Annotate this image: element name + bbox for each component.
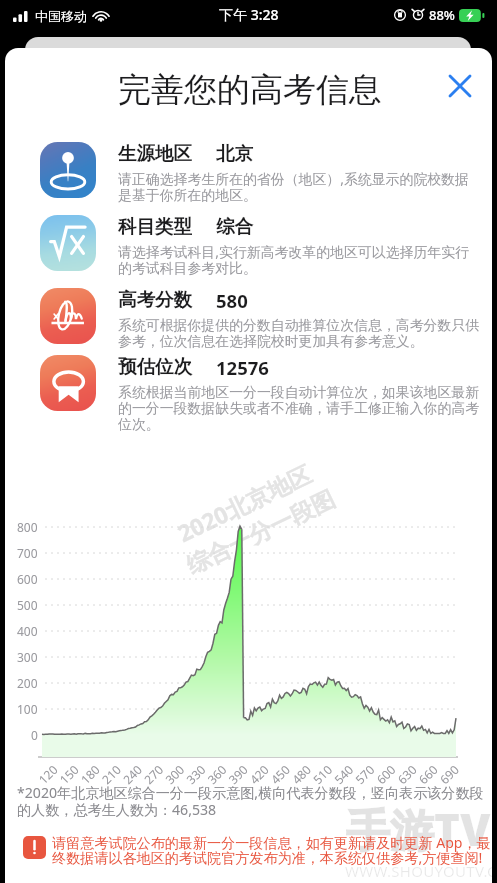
staticText: 综合 — [216, 215, 253, 238]
staticText: 12576 — [216, 355, 269, 380]
staticText: 中国移动 — [35, 8, 87, 24]
staticText: 科目类型 — [118, 215, 192, 238]
staticText: 请选择考试科目,实行新高考改革的地区可以选择历年实行 的考试科目参考对比。 — [118, 242, 469, 277]
staticText: 手游TV — [346, 799, 491, 859]
button[interactable]: 提示 — [23, 836, 46, 859]
staticText: 完善您的高考信息 — [118, 69, 382, 111]
staticText: 预估位次 — [118, 355, 192, 378]
staticText: WWW.SHOUYOUTV.COM — [345, 861, 497, 881]
button[interactable]: 预估位次 — [0, 355, 497, 433]
staticText: *2020年北京地区综合一分一段示意图,横向代表分数段，竖向表示该分数段 的人数… — [17, 783, 484, 820]
staticText: 系统可根据你提供的分数自动推算位次信息，高考分数只供 参考，位次信息在选择院校时… — [118, 317, 480, 350]
button[interactable]: 高考分数 — [0, 288, 497, 350]
staticText: 请正确选择考生所在的省份（地区）,系统显示的院校数据 是基于你所在的地区。 — [118, 169, 469, 204]
button[interactable]: 科目类型 — [0, 215, 497, 277]
staticText: 高考分数 — [118, 288, 192, 311]
staticText: 88% — [429, 6, 455, 24]
staticText: 系统根据当前地区一分一段自动计算位次，如果该地区最新 的一分一段数据缺失或者不准… — [118, 384, 480, 433]
staticText: 下午 3:28 — [219, 5, 279, 24]
staticText: 生源地区 — [118, 142, 192, 165]
staticText: 580 — [216, 288, 248, 313]
staticText: 请留意考试院公布的最新一分一段信息，如有更新请及时更新 App，最 终数据请以各… — [52, 833, 491, 867]
button[interactable]: 生源地区 — [0, 142, 497, 204]
staticText: 北京 — [216, 142, 253, 165]
button[interactable]: 关闭 — [444, 70, 476, 102]
